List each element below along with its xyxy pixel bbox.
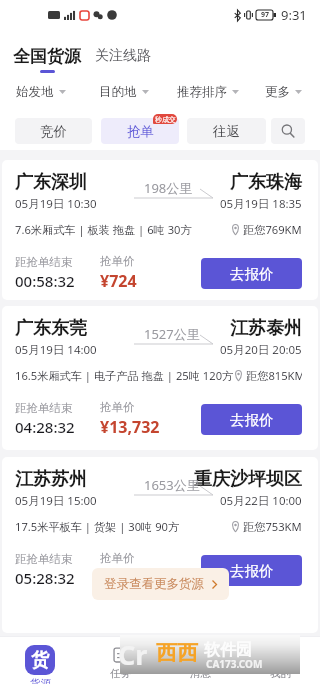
staticText: 抢单价 [100, 400, 135, 414]
staticText: 抢单价 [100, 254, 135, 268]
staticText: 货源 [30, 677, 51, 684]
staticText: 始发地 [16, 84, 54, 100]
staticText: 05月22日 10:00 [220, 493, 302, 509]
staticText: 05月20日 20:05 [220, 342, 302, 358]
staticText: 去报价 [230, 265, 274, 283]
button[interactable]: 全国货源 [13, 46, 81, 73]
button[interactable]: 推荐排序 [166, 77, 250, 107]
staticText: 目的地 [99, 84, 137, 100]
button[interactable]: 货 [0, 636, 80, 684]
button[interactable]: 目的地 [81, 77, 166, 107]
button[interactable]: 始发地 [0, 77, 81, 107]
staticText: 江苏泰州 [230, 317, 302, 340]
staticText: 抢单价 [100, 551, 135, 565]
button[interactable]: 江苏苏州 [2, 457, 318, 633]
staticText: ¥11,212 [100, 567, 160, 589]
button[interactable]: 我的 [240, 636, 320, 684]
staticText: 软件园 [204, 640, 252, 660]
staticText: 西西 [156, 640, 198, 666]
staticText: ¥13,732 [100, 416, 160, 438]
staticText: 广东珠海 [230, 171, 302, 194]
staticText: 关注线路 [95, 47, 151, 65]
staticText: 推荐排序 [177, 84, 227, 100]
staticText: 05月19日 18:35 [220, 196, 302, 212]
staticText: 去报价 [230, 411, 274, 429]
button[interactable]: 广东深圳 [2, 160, 318, 300]
staticText: 竞价 [40, 123, 67, 140]
staticText: 秒成交 [155, 115, 176, 124]
staticText: 更多 [265, 84, 290, 100]
staticText: 江苏苏州 [15, 468, 87, 491]
staticText: 距您769KM [243, 222, 302, 237]
staticText: 我的 [270, 667, 291, 680]
button[interactable]: 广东东莞 [2, 306, 318, 450]
staticText: 距您815KM [246, 368, 302, 383]
staticText: 去报价 [230, 562, 274, 580]
staticText: 距抢单结束 [15, 552, 73, 566]
button[interactable]: 抢单 [101, 118, 179, 144]
staticText: 17.5米平板车 | 货架 | 30吨 90方 [15, 519, 180, 534]
button[interactable]: 更多 [250, 77, 316, 107]
staticText: 货 [31, 649, 49, 672]
staticText: 距您753KM [243, 519, 302, 534]
staticText: 198公里 [144, 179, 193, 197]
staticText: 05月19日 14:00 [15, 342, 97, 358]
staticText: 广东东莞 [15, 317, 87, 340]
button[interactable]: 关注线路 [95, 47, 151, 65]
staticText: 16.5米厢式车 | 电子产品 拖盘 | 25吨 120方 [15, 368, 234, 383]
staticText: 04:28:32 [15, 417, 75, 437]
staticText: 距抢单结束 [15, 401, 73, 415]
staticText: CA173.COM [206, 657, 263, 671]
button[interactable]: 去报价 [201, 555, 302, 586]
button[interactable]: 消息 [160, 636, 240, 684]
staticText: 1527公里 [144, 325, 200, 343]
button[interactable]: 去报价 [201, 258, 302, 289]
staticText: 登录查看更多货源 [104, 576, 204, 592]
staticText: 往返 [213, 123, 240, 140]
button[interactable]: 登录查看更多货源 [92, 568, 229, 600]
button[interactable]: 竞价 [15, 118, 92, 144]
staticText: 1653公里 [144, 476, 200, 494]
staticText: 00:58:32 [15, 271, 75, 291]
staticText: 全国货源 [13, 46, 81, 67]
staticText: 9:31 [281, 6, 307, 24]
staticText: 距抢单结束 [15, 255, 73, 269]
staticText: 消息 [190, 667, 211, 680]
button[interactable]: Search [271, 118, 305, 144]
staticText: 重庆沙坪坝区 [194, 468, 302, 491]
staticText: 任务 [110, 667, 131, 680]
button[interactable]: 往返 [187, 118, 266, 144]
button[interactable]: 任务 [80, 636, 160, 684]
staticText: 05月19日 15:00 [15, 493, 97, 509]
button[interactable]: 去报价 [201, 404, 302, 435]
staticText: 7.6米厢式车 | 板装 拖盘 | 6吨 30方 [15, 222, 192, 237]
staticText: 05月19日 10:30 [15, 196, 97, 212]
staticText: 抢单 [127, 123, 154, 140]
staticText: 97 [261, 10, 270, 20]
staticText: 05:28:32 [15, 568, 75, 588]
staticText: Cr [118, 636, 148, 673]
staticText: 广东深圳 [15, 171, 87, 194]
staticText: ¥724 [100, 270, 137, 292]
